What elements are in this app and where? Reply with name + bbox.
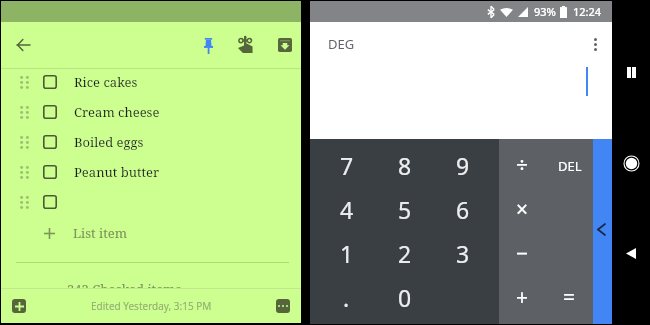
button[interactable]: 8	[376, 144, 434, 187]
button[interactable]: Boiled eggs	[1, 127, 301, 157]
button[interactable]: 9	[434, 144, 492, 187]
staticText: 5	[398, 194, 412, 225]
button[interactable]: 1	[317, 231, 376, 275]
button[interactable]: +	[499, 275, 546, 319]
staticText: ×	[516, 195, 529, 224]
button[interactable]: Back	[618, 240, 644, 266]
button[interactable]: Recent apps	[618, 59, 644, 85]
button[interactable]: 3	[434, 231, 492, 275]
button[interactable]: 5	[376, 187, 434, 231]
staticText: 93%	[534, 4, 556, 19]
button[interactable]: −	[499, 231, 546, 275]
button[interactable]: Rice cakes	[1, 67, 301, 97]
button[interactable]: =	[546, 275, 593, 319]
staticText: Boiled eggs	[74, 133, 144, 151]
button[interactable]: 4	[317, 187, 376, 231]
button[interactable]: DEL	[546, 144, 593, 187]
button[interactable]	[1, 187, 301, 217]
staticText: Edited Yesterday, 3:15 PM	[91, 299, 212, 313]
staticText: +	[516, 283, 529, 312]
staticText: =	[563, 283, 576, 312]
staticText: 1	[340, 238, 354, 269]
staticText: 6	[456, 194, 470, 225]
staticText: ÷	[516, 151, 529, 180]
staticText: 7	[340, 150, 354, 181]
staticText: 242 Checked items	[67, 280, 182, 298]
button[interactable]: .	[317, 275, 376, 319]
button[interactable]: ÷	[499, 144, 546, 187]
staticText: 9	[456, 150, 470, 181]
staticText: 8	[398, 150, 412, 181]
button[interactable]: Cream cheese	[1, 97, 301, 127]
staticText: 4	[340, 194, 354, 225]
button[interactable]: Add	[12, 299, 26, 313]
staticText: 0	[398, 282, 412, 313]
staticText: Rice cakes	[74, 73, 138, 91]
button[interactable]: 6	[434, 187, 492, 231]
staticText: 12:24	[573, 4, 602, 19]
button[interactable]: More options	[583, 32, 607, 56]
staticText: Peanut butter	[74, 163, 160, 181]
staticText: Cream cheese	[74, 103, 160, 121]
staticText: 3	[456, 238, 470, 269]
button[interactable]: 7	[317, 144, 376, 187]
staticText: −	[516, 239, 529, 268]
button[interactable]: More options	[276, 299, 290, 313]
button[interactable]: 2	[376, 231, 434, 275]
staticText: DEL	[558, 157, 582, 175]
button[interactable]: List item	[1, 218, 301, 248]
button[interactable]: 242 Checked items	[1, 275, 301, 303]
staticText: List item	[73, 224, 128, 242]
staticText: DEG	[328, 35, 355, 53]
button[interactable]: 0	[376, 275, 434, 319]
button[interactable]: Peanut butter	[1, 157, 301, 187]
button[interactable]: Home	[618, 150, 644, 176]
button[interactable]: Pin	[196, 33, 221, 58]
staticText: .	[343, 282, 350, 313]
button[interactable]: Show history	[593, 139, 612, 324]
button[interactable]: Archive	[272, 32, 297, 57]
button[interactable]: Reminder	[233, 32, 258, 57]
button[interactable]: ×	[499, 187, 546, 231]
staticText: 2	[398, 238, 412, 269]
button[interactable]: Back	[11, 32, 36, 57]
